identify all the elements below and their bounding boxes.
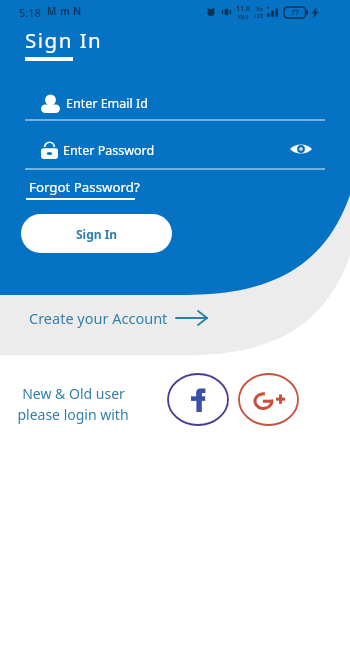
staticText: Enter Password — [63, 142, 155, 159]
button[interactable]: Sign In — [21, 214, 172, 253]
button[interactable]: Enter Password — [25, 140, 325, 160]
staticText: 11.0 — [236, 4, 250, 14]
staticText: M — [47, 4, 57, 18]
button[interactable]: Create your Account — [29, 308, 207, 328]
staticText: 5:18 — [19, 5, 41, 20]
staticText: KB/S — [238, 14, 249, 20]
staticText: New & Old user — [22, 384, 125, 403]
staticText: Enter Email Id — [66, 95, 148, 112]
staticText: 77 — [291, 8, 300, 18]
button[interactable]: Sign in with Google — [238, 373, 299, 426]
button[interactable]: Sign in with Facebook — [167, 373, 229, 426]
staticText: Create your Account — [29, 308, 168, 328]
button[interactable]: Forgot Password? — [26, 178, 137, 200]
staticText: please login with — [17, 405, 129, 424]
staticText: N — [73, 4, 82, 18]
staticText: Vo — [256, 5, 263, 12]
staticText: Forgot Password? — [29, 178, 140, 196]
button[interactable]: Enter Email Id — [25, 92, 325, 115]
staticText: Sign In — [25, 26, 103, 54]
staticText: Sign In — [76, 226, 118, 242]
staticText: m — [60, 4, 70, 18]
staticText: LTE — [254, 12, 264, 19]
button[interactable]: Show password — [288, 138, 314, 160]
